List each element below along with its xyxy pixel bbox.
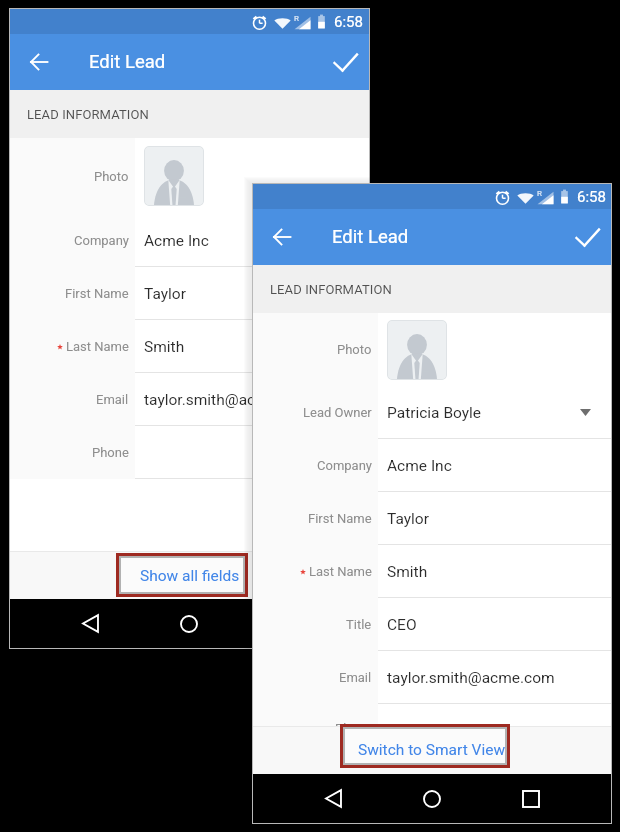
button[interactable]: Last Name (253, 545, 611, 598)
button[interactable]: Back (62, 599, 118, 648)
staticText: Smith (144, 338, 185, 356)
button[interactable]: First Name (253, 492, 611, 545)
button[interactable]: Recent apps (503, 774, 559, 823)
staticText: Show all fields (140, 567, 240, 585)
staticText: Switch to Smart View (358, 741, 506, 759)
button[interactable]: Save (321, 34, 369, 90)
staticText: Smith (387, 563, 428, 581)
button[interactable]: Email (10, 373, 369, 426)
staticText: Acme Inc (144, 232, 209, 250)
staticText: taylor.smith@acme.com (387, 669, 555, 687)
staticText: Last Name (309, 564, 372, 579)
button[interactable]: Company (253, 439, 611, 492)
button[interactable]: Save (563, 209, 611, 265)
staticText: 6:58 (334, 13, 363, 31)
staticText: Company (74, 233, 129, 248)
staticText: First Name (65, 286, 129, 301)
staticText: 6:58 (577, 188, 606, 206)
staticText: Title (346, 617, 372, 632)
staticText: Email (339, 670, 372, 685)
staticText: Photo (337, 342, 372, 357)
staticText: Edit Lead (89, 51, 166, 73)
staticText: Edit Lead (332, 226, 409, 248)
button[interactable]: Photo (10, 138, 369, 214)
staticText: Lead Owner (303, 405, 372, 420)
button[interactable]: Company (10, 214, 369, 267)
button[interactable]: Email (253, 651, 611, 704)
button[interactable]: Back (305, 774, 361, 823)
button[interactable]: Navigate up (253, 209, 310, 265)
button[interactable]: Lead Owner (253, 386, 611, 439)
staticText: First Name (308, 511, 372, 526)
staticText: Taylor (387, 510, 429, 528)
staticText: Photo (94, 169, 129, 184)
staticText: Acme Inc (387, 457, 452, 475)
staticText: Phone (92, 445, 129, 460)
button[interactable]: Show all fields (130, 559, 250, 593)
staticText: R (537, 189, 542, 198)
staticText: Email (96, 392, 129, 407)
button[interactable]: Title (253, 598, 611, 651)
button[interactable]: Switch to Smart View (348, 733, 516, 767)
button[interactable]: Phone (10, 426, 369, 479)
button[interactable]: First Name (10, 267, 369, 320)
staticText: taylor.smith@acme.com (144, 391, 312, 409)
staticText: LEAD INFORMATION (270, 282, 392, 297)
staticText: CEO (387, 616, 417, 634)
button[interactable]: Last Name (10, 320, 369, 373)
staticText: Phone (335, 721, 372, 726)
staticText: Last Name (66, 339, 129, 354)
button[interactable]: Photo (253, 313, 611, 386)
staticText: R (294, 14, 299, 23)
button[interactable]: Home (404, 774, 460, 823)
button[interactable]: Navigate up (10, 34, 67, 90)
staticText: LEAD INFORMATION (27, 107, 149, 122)
button[interactable]: Home (161, 599, 217, 648)
staticText: Taylor (144, 285, 186, 303)
staticText: Company (317, 458, 372, 473)
staticText: Patricia Boyle (387, 404, 482, 422)
